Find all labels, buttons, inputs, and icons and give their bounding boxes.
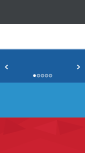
- button[interactable]: Previous slide: [0, 48, 13, 82]
- button[interactable]: Next slide: [72, 48, 85, 82]
